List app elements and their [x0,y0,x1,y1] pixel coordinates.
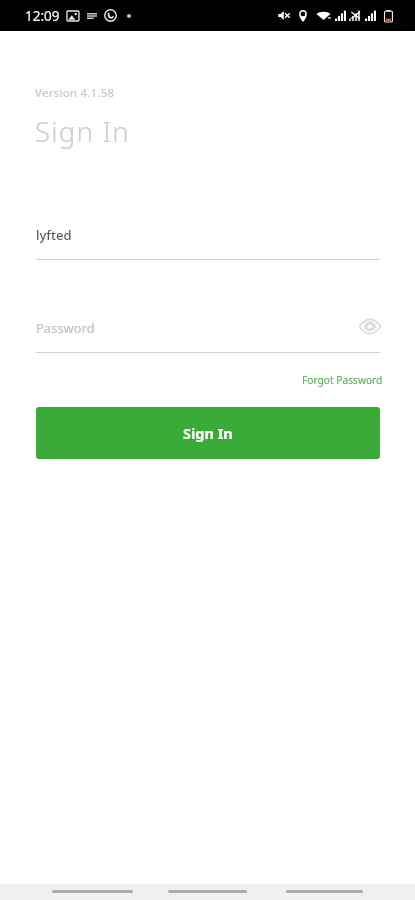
button[interactable]: Home [159,884,255,900]
staticText: lyfted [36,226,72,244]
button[interactable]: Back [44,884,140,900]
staticText: Sign In [183,423,233,443]
button[interactable]: Username [36,220,380,260]
staticText: Version 4.1.58 [35,85,115,101]
staticText: 12:09 [25,7,60,25]
button[interactable]: Sign In [36,407,380,459]
staticText: Forgot Password [302,373,383,387]
staticText: Password [36,319,95,337]
staticText: Sign In [35,113,130,150]
button[interactable]: Password [36,313,380,353]
button[interactable]: Recent apps [276,884,372,900]
button[interactable]: Forgot Password [298,370,387,390]
button[interactable]: Show password [356,312,384,340]
